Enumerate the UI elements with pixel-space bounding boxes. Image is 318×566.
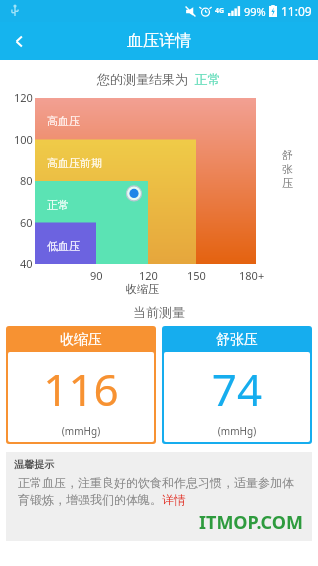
staticText: 100 [14,132,33,147]
staticText: 150 [187,268,206,283]
button[interactable]: 舒张压 [162,326,312,444]
staticText: (mmHg) [164,424,310,438]
staticText: 正常 [47,198,69,212]
staticText: 116 [8,359,154,419]
staticText: 120 [14,90,33,105]
staticText: 180+ [239,268,265,283]
staticText: 收缩压 [126,282,159,296]
staticText: 99% [244,4,266,19]
staticText: 高血压 [47,114,80,128]
staticText: 120 [139,268,158,283]
button[interactable]: 收缩压 [6,326,156,444]
staticText: 4G [215,6,225,16]
staticText: (mmHg) [8,424,154,438]
staticText: 收缩压 [60,331,102,349]
staticText: 80 [20,173,33,188]
staticText: 血压详情 [127,31,191,51]
staticText: 60 [20,215,33,230]
button[interactable]: Back [0,22,38,60]
staticText: 低血压 [47,239,80,253]
staticText: 当前测量 [133,304,185,320]
staticText: 90 [90,268,103,283]
staticText: ITMOP.COM [199,510,304,535]
staticText: 高血压前期 [47,156,102,170]
staticText: 压 [282,176,293,190]
staticText: 舒 [282,148,293,162]
staticText: 11:09 [281,3,312,19]
staticText: 舒张压 [216,331,258,349]
staticText: 您的测量结果为 正常 [97,70,221,88]
staticText: 张 [282,162,293,176]
staticText: 74 [164,359,310,419]
staticText: 温馨提示 [14,458,54,471]
button[interactable]: 正常血压，注重良好的饮食和作息习惯，适量参加体育锻炼，增强我们的体魄。详情 [18,475,304,508]
staticText: 40 [20,256,33,271]
